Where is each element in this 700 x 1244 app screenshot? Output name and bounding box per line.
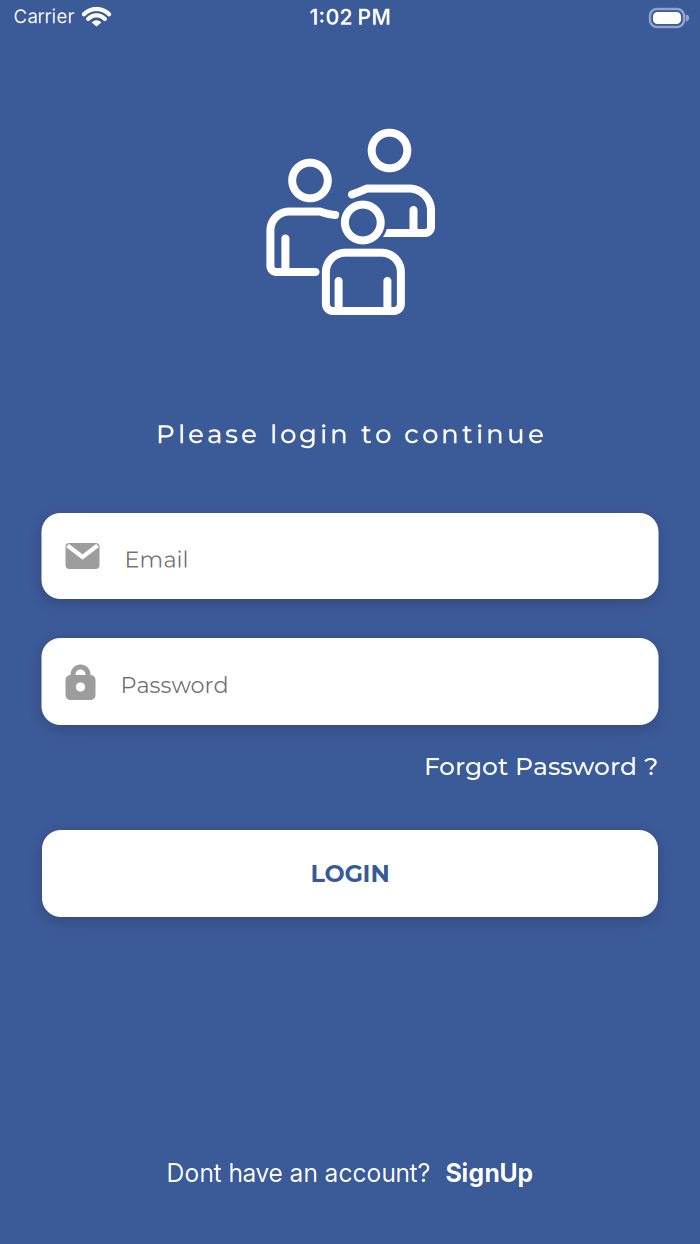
staticText: LOGIN [310, 859, 389, 888]
staticText: Email [124, 546, 188, 573]
button[interactable]: LOGIN [42, 830, 658, 917]
staticText: Forgot Password ? [424, 751, 658, 781]
button[interactable]: SignUp [445, 1158, 533, 1188]
button[interactable]: Password [41, 638, 658, 725]
staticText: P l e a s e l o g i n t o c o n t i n u … [156, 418, 544, 450]
staticText: 1:02 PM [309, 4, 390, 30]
button[interactable]: Email [41, 513, 658, 599]
staticText: Carrier [13, 5, 74, 28]
staticText: Dont have an account? [166, 1158, 430, 1188]
button[interactable]: Forgot Password ? [424, 751, 658, 781]
staticText: SignUp [445, 1158, 533, 1188]
staticText: Password [120, 671, 228, 699]
